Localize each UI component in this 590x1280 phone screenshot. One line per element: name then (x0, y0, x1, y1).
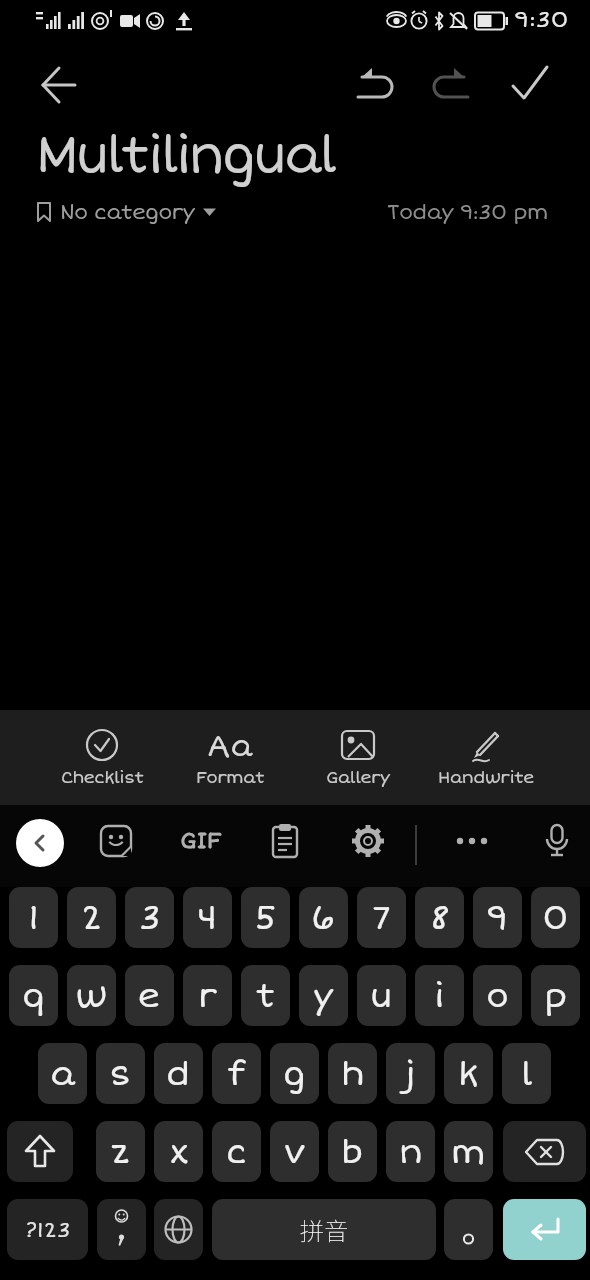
staticText: c (226, 1131, 247, 1173)
button[interactable] (154, 1199, 203, 1260)
staticText: Multilingual (36, 124, 335, 187)
button[interactable]: 4 (183, 887, 232, 948)
staticText: p (544, 975, 568, 1017)
staticText: n (399, 1131, 423, 1173)
staticText: u (370, 975, 393, 1017)
button[interactable]: 9 (473, 887, 522, 948)
button[interactable]: b (328, 1121, 377, 1182)
button[interactable]: e (125, 965, 174, 1026)
button[interactable] (505, 58, 555, 112)
button[interactable]: No category (36, 192, 216, 232)
button[interactable] (503, 1121, 586, 1182)
button[interactable] (267, 823, 303, 859)
button[interactable] (97, 1199, 146, 1260)
button[interactable] (539, 823, 575, 859)
staticText: Aa (207, 728, 253, 762)
button[interactable] (350, 823, 386, 859)
staticText: f (227, 1053, 246, 1095)
staticText: 6 (311, 897, 336, 939)
staticText: e (138, 975, 161, 1017)
staticText: 1 (28, 897, 40, 939)
staticText: No category (60, 199, 195, 225)
staticText: r (198, 975, 218, 1017)
button[interactable] (30, 58, 86, 112)
button[interactable]: 1 (9, 887, 58, 948)
button[interactable]: a (38, 1043, 87, 1104)
staticText: 4 (197, 897, 218, 939)
button[interactable]: s (96, 1043, 145, 1104)
button[interactable] (430, 60, 476, 110)
staticText: b (341, 1131, 364, 1173)
button[interactable]: f (212, 1043, 261, 1104)
staticText: Handwrite (438, 767, 534, 788)
button[interactable] (350, 60, 396, 110)
staticText: i (434, 975, 445, 1017)
staticText: 5 (254, 897, 277, 939)
button[interactable]: y (299, 965, 348, 1026)
staticText: z (111, 1131, 130, 1173)
button[interactable]: 5 (241, 887, 290, 948)
staticText: k (458, 1053, 479, 1095)
button[interactable]: 8 (415, 887, 464, 948)
staticText: l (521, 1053, 533, 1095)
button[interactable] (454, 823, 490, 859)
staticText: Format (196, 767, 265, 788)
button[interactable]: n (386, 1121, 435, 1182)
button[interactable]: 0 (531, 887, 580, 948)
button[interactable]: k (444, 1043, 493, 1104)
button[interactable]: m (444, 1121, 493, 1182)
button[interactable]: z (96, 1121, 145, 1182)
button[interactable]: v (270, 1121, 319, 1182)
button[interactable] (444, 1199, 493, 1260)
button[interactable]: Checklist (38, 710, 166, 805)
button[interactable] (98, 823, 134, 859)
button[interactable]: l (502, 1043, 551, 1104)
button[interactable]: Gallery (294, 710, 422, 805)
button[interactable]: 2 (67, 887, 116, 948)
staticText: Today 9:30 pm (387, 199, 548, 225)
button[interactable]: h (328, 1043, 377, 1104)
button[interactable]: d (154, 1043, 203, 1104)
button[interactable]: x (154, 1121, 203, 1182)
button[interactable]: o (473, 965, 522, 1026)
staticText: 9 (486, 897, 509, 939)
button[interactable]: Handwrite (422, 710, 550, 805)
button[interactable]: c (212, 1121, 261, 1182)
staticText: t (256, 975, 276, 1017)
button[interactable]: GIF (178, 823, 224, 859)
button[interactable] (7, 1121, 73, 1182)
staticText: o (486, 975, 509, 1017)
button[interactable]: t (241, 965, 290, 1026)
staticText: v (284, 1131, 306, 1173)
staticText: d (166, 1053, 191, 1095)
button[interactable] (503, 1199, 586, 1260)
button[interactable]: r (183, 965, 232, 1026)
button[interactable]: ?123 (7, 1199, 88, 1260)
button[interactable]: j (386, 1043, 435, 1104)
button[interactable]: 3 (125, 887, 174, 948)
staticText: 2 (81, 897, 103, 939)
button[interactable]: 6 (299, 887, 348, 948)
staticText: y (313, 975, 334, 1017)
staticText: g (283, 1053, 306, 1095)
button[interactable]: 7 (357, 887, 406, 948)
button[interactable]: u (357, 965, 406, 1026)
staticText: 9:30 (514, 6, 569, 34)
staticText: j (405, 1053, 416, 1095)
button[interactable]: w (67, 965, 116, 1026)
button[interactable]: p (531, 965, 580, 1026)
staticText: 7 (372, 897, 391, 939)
button[interactable]: q (9, 965, 58, 1026)
staticText: a (50, 1053, 76, 1095)
staticText: m (451, 1131, 486, 1173)
button[interactable]: Aa (166, 710, 294, 805)
staticText: 0 (542, 897, 569, 939)
button[interactable]: g (270, 1043, 319, 1104)
button[interactable]: i (415, 965, 464, 1026)
staticText: q (22, 975, 45, 1017)
staticText: w (75, 975, 108, 1017)
button[interactable]: 拼音 (212, 1199, 436, 1260)
staticText: x (169, 1131, 189, 1173)
button[interactable] (16, 819, 64, 867)
staticText: h (341, 1053, 365, 1095)
